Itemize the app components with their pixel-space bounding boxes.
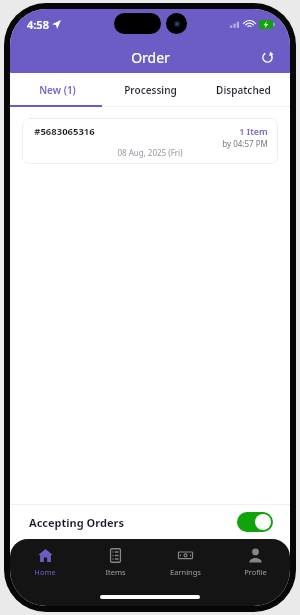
staticText: Profile bbox=[244, 567, 267, 577]
button[interactable]: Items bbox=[80, 548, 150, 577]
staticText: Order bbox=[131, 48, 170, 67]
button[interactable]: Accepting Orders bbox=[10, 505, 290, 539]
staticText: 08 Aug, 2025 (Fri) bbox=[117, 147, 183, 158]
staticText: 4:58 bbox=[27, 17, 49, 32]
staticText: by 04:57 PM bbox=[222, 138, 268, 149]
staticText: Home bbox=[34, 567, 56, 577]
button[interactable]: Earnings bbox=[150, 548, 220, 577]
button[interactable]: Refresh bbox=[253, 43, 281, 71]
button[interactable]: Home bbox=[10, 548, 80, 577]
staticText: New (1) bbox=[39, 83, 76, 97]
button[interactable]: Processing bbox=[104, 73, 197, 107]
staticText: Dispatched bbox=[216, 83, 271, 97]
staticText: Accepting Orders bbox=[29, 515, 124, 530]
button[interactable]: Dispatched bbox=[197, 73, 290, 107]
button[interactable]: #5683065316 bbox=[22, 118, 278, 164]
button[interactable]: New (1) bbox=[10, 73, 104, 107]
staticText: #5683065316 bbox=[34, 125, 95, 138]
staticText: Processing bbox=[124, 83, 177, 97]
button[interactable]: Accepting Orders toggle bbox=[237, 512, 273, 532]
button[interactable]: Profile bbox=[220, 548, 290, 577]
staticText: Earnings bbox=[170, 567, 201, 577]
staticText: Items bbox=[105, 567, 126, 577]
staticText: 1 Item bbox=[239, 125, 268, 137]
